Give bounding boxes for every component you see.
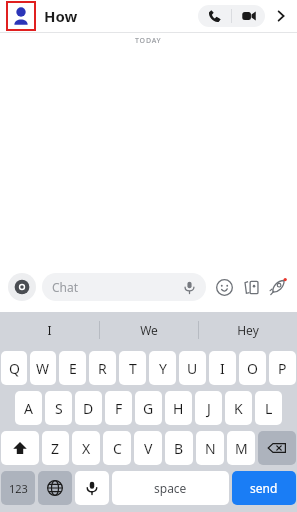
staticText: H — [173, 399, 184, 418]
button[interactable]: Rocket — [267, 276, 289, 298]
button[interactable]: H — [165, 391, 192, 425]
staticText: W — [36, 359, 50, 378]
staticText: J — [207, 399, 211, 418]
staticText: Chat — [52, 279, 79, 295]
staticText: Y — [159, 359, 167, 378]
button[interactable]: send — [232, 471, 296, 505]
button[interactable]: V — [134, 431, 162, 465]
button[interactable]: N — [196, 431, 224, 465]
button[interactable]: Switch language — [38, 471, 72, 505]
button[interactable]: Z — [42, 431, 69, 465]
button[interactable]: K — [225, 391, 252, 425]
staticText: R — [98, 359, 107, 378]
button[interactable]: L — [255, 391, 282, 425]
staticText: A — [24, 399, 33, 418]
button[interactable]: I — [0, 312, 99, 348]
button[interactable]: More — [271, 6, 291, 26]
button[interactable]: W — [30, 351, 56, 385]
button[interactable]: O — [239, 351, 266, 385]
staticText: B — [174, 439, 184, 458]
button[interactable]: We — [100, 312, 198, 348]
staticText: 123 — [9, 481, 28, 496]
staticText: C — [113, 439, 122, 458]
button[interactable]: R — [89, 351, 116, 385]
staticText: Hey — [237, 322, 259, 338]
staticText: P — [278, 359, 287, 378]
staticText: T — [129, 359, 137, 378]
button[interactable]: C — [103, 431, 131, 465]
staticText: U — [187, 359, 198, 378]
staticText: Z — [51, 439, 60, 458]
button[interactable]: Q — [1, 351, 27, 385]
button[interactable]: Y — [149, 351, 176, 385]
staticText: space — [154, 480, 187, 496]
button[interactable]: Voice input — [75, 471, 109, 505]
button[interactable]: Chat — [42, 273, 206, 301]
staticText: G — [143, 399, 154, 418]
button[interactable]: Video call — [232, 5, 265, 27]
staticText: N — [205, 439, 216, 458]
button[interactable]: G — [135, 391, 162, 425]
staticText: M — [235, 439, 248, 458]
button[interactable]: F — [105, 391, 132, 425]
button[interactable]: J — [195, 391, 222, 425]
button[interactable]: Profile avatar — [6, 1, 36, 31]
staticText: Q — [9, 359, 20, 378]
button[interactable]: Camera — [8, 273, 36, 301]
button[interactable]: space — [112, 471, 229, 505]
button[interactable]: Call — [198, 5, 231, 27]
staticText: How — [44, 6, 78, 26]
button[interactable]: Shift — [1, 431, 39, 465]
staticText: K — [234, 399, 243, 418]
staticText: send — [250, 480, 278, 496]
staticText: S — [55, 399, 63, 418]
staticText: O — [247, 359, 258, 378]
staticText: V — [144, 439, 153, 458]
button[interactable]: X — [72, 431, 100, 465]
staticText: We — [140, 322, 158, 338]
staticText: I — [47, 322, 52, 338]
staticText: E — [69, 359, 77, 378]
staticText: D — [83, 399, 94, 418]
button[interactable]: Hey — [199, 312, 297, 348]
button[interactable]: D — [75, 391, 102, 425]
staticText: X — [82, 439, 91, 458]
staticText: F — [115, 399, 123, 418]
button[interactable]: Stickers — [240, 276, 262, 298]
button[interactable]: M — [227, 431, 255, 465]
button[interactable]: Backspace — [258, 431, 296, 465]
button[interactable]: T — [119, 351, 146, 385]
button[interactable]: I — [209, 351, 236, 385]
button[interactable]: P — [269, 351, 296, 385]
button[interactable]: S — [45, 391, 72, 425]
button[interactable]: B — [165, 431, 193, 465]
staticText: I — [220, 359, 225, 378]
button[interactable]: 123 — [1, 471, 35, 505]
staticText: L — [265, 399, 273, 418]
staticText: TODAY — [135, 36, 162, 46]
button[interactable]: Emoji — [213, 276, 235, 298]
button[interactable]: U — [179, 351, 206, 385]
button[interactable]: A — [15, 391, 42, 425]
button[interactable]: E — [59, 351, 86, 385]
